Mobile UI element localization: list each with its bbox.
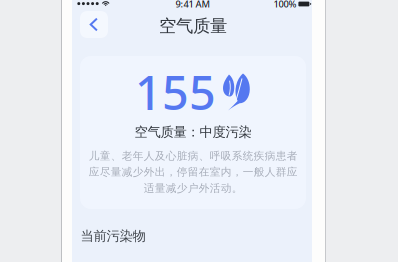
staticText: 100% [273, 0, 296, 10]
staticText: 155 [135, 61, 216, 123]
staticText: 儿童、老年人及心脏病、呼吸系统疾病患者应尽量减少外出，停留在室内，一般人群应适量… [88, 149, 297, 195]
button[interactable]: Back [80, 11, 108, 38]
staticText: 9:41 AM [175, 0, 210, 10]
staticText: 空气质量 [159, 15, 227, 37]
staticText: 当前污染物 [80, 228, 145, 244]
staticText: 空气质量：中度污染 [134, 124, 251, 140]
